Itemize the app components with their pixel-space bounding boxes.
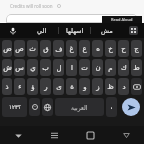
staticText: ا <box>71 64 73 72</box>
staticText: ض <box>3 45 12 53</box>
button[interactable]: ؤ <box>27 78 38 95</box>
staticText: ط <box>133 64 140 72</box>
button[interactable]: ص <box>14 40 25 57</box>
button[interactable]: د <box>118 78 129 95</box>
button[interactable]: Home <box>72 126 108 144</box>
staticText: اسهلها <box>66 27 84 35</box>
button[interactable]: ض <box>2 40 12 57</box>
button[interactable]: Change language <box>42 98 53 116</box>
button[interactable]: ف <box>53 40 64 57</box>
staticText: ء <box>18 83 22 91</box>
button[interactable] <box>6 14 138 23</box>
button[interactable]: ي <box>27 59 38 76</box>
button[interactable]: العربية <box>55 98 104 116</box>
staticText: ه <box>96 45 100 53</box>
button[interactable]: اسهلها <box>59 23 90 38</box>
button[interactable]: Emoji <box>29 98 40 116</box>
button[interactable]: ج <box>131 40 142 57</box>
button[interactable]: ز <box>92 78 103 95</box>
staticText: ع <box>82 45 87 53</box>
staticText: ج <box>134 45 139 53</box>
staticText: ى <box>56 83 62 91</box>
button[interactable]: ا <box>66 59 77 76</box>
button[interactable]: Voice input <box>0 23 26 38</box>
staticText: ظ <box>107 83 114 91</box>
staticText: غ <box>69 45 74 53</box>
staticText: ذ <box>5 83 9 91</box>
button[interactable]: ة <box>66 78 77 95</box>
button[interactable]: Menu <box>36 126 72 144</box>
button[interactable]: ك <box>118 59 129 76</box>
button[interactable]: ه <box>92 40 103 57</box>
staticText: ص <box>15 45 24 53</box>
button[interactable]: س <box>14 59 25 76</box>
button[interactable]: ع <box>79 40 90 57</box>
button[interactable]: Send <box>122 98 140 116</box>
staticText: Credits will roll soon <box>10 3 53 9</box>
button[interactable]: ى <box>53 78 64 95</box>
button[interactable]: ق <box>40 40 51 57</box>
button[interactable]: ن <box>92 59 103 76</box>
button[interactable]: ر <box>40 78 51 95</box>
button[interactable]: خ <box>105 40 116 57</box>
button[interactable]: ظ <box>105 78 116 95</box>
button[interactable]: ح <box>118 40 129 57</box>
button[interactable]: ط <box>131 59 142 76</box>
staticText: مش <box>101 27 113 35</box>
button[interactable]: ت <box>79 59 90 76</box>
staticText: ح <box>121 45 126 53</box>
staticText: ن <box>95 64 101 72</box>
staticText: ف <box>55 45 63 53</box>
button[interactable]: ل <box>53 59 64 76</box>
button[interactable]: ث <box>27 40 38 57</box>
staticText: خ <box>108 45 113 53</box>
staticText: ، <box>110 103 113 111</box>
button[interactable]: Backspace <box>131 78 142 95</box>
button[interactable]: ، <box>106 97 117 117</box>
button[interactable]: غ <box>66 40 77 57</box>
staticText: و <box>83 83 87 91</box>
staticText: ث <box>29 45 36 53</box>
staticText: ت <box>81 64 88 72</box>
button[interactable]: ب <box>40 59 51 76</box>
staticText: ز <box>96 83 100 91</box>
staticText: الي <box>37 27 47 35</box>
button[interactable]: Hide keyboard <box>0 126 36 144</box>
staticText: ش <box>3 64 12 72</box>
staticText: ك <box>121 64 127 72</box>
button[interactable]: ش <box>2 59 12 76</box>
staticText: العربية <box>71 104 88 111</box>
button[interactable]: Back <box>108 126 144 144</box>
staticText: د <box>122 83 126 91</box>
button[interactable]: مش <box>91 23 122 38</box>
staticText: Read Aloud <box>111 17 133 22</box>
button[interactable]: ذ <box>2 78 12 95</box>
staticText: م <box>108 64 113 72</box>
staticText: ب <box>42 64 49 72</box>
staticText: ة <box>70 83 74 91</box>
button[interactable]: الي <box>26 23 58 38</box>
staticText: ل <box>56 64 62 72</box>
button[interactable]: More options <box>122 23 144 38</box>
staticText: ق <box>43 45 49 53</box>
staticText: ؟١٢٣ <box>9 104 21 110</box>
button[interactable]: ؟١٢٣ <box>2 97 27 117</box>
button[interactable]: ء <box>14 78 25 95</box>
staticText: س <box>15 64 24 72</box>
staticText: ر <box>44 83 48 91</box>
staticText: ؤ <box>31 83 35 91</box>
button[interactable]: م <box>105 59 116 76</box>
staticText: ي <box>30 64 36 72</box>
button[interactable]: و <box>79 78 90 95</box>
